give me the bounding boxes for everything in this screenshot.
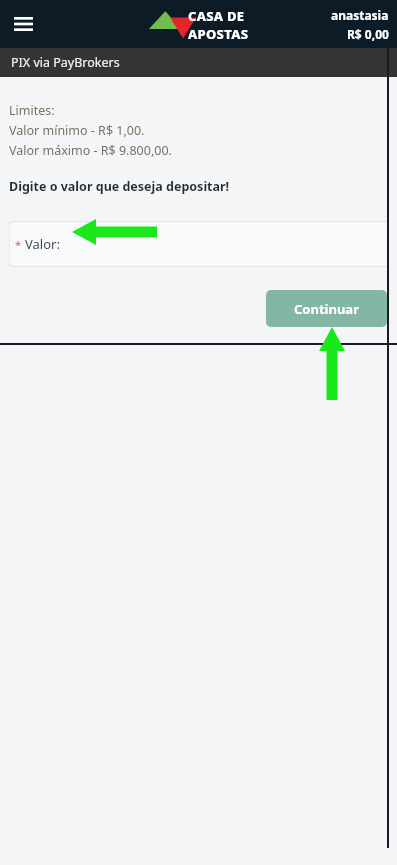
staticText: R$ 0,00	[347, 26, 389, 42]
staticText: PIX via PayBrokers	[11, 54, 120, 71]
button[interactable]: Continuar	[266, 290, 387, 327]
staticText: Valor máximo - R$ 9.800,00.	[9, 142, 172, 159]
button[interactable]: Casa de Apostas home	[148, 6, 257, 42]
staticText: Digite o valor que deseja depositar!	[9, 178, 230, 195]
button[interactable]: PIX via PayBrokers	[0, 48, 397, 77]
button[interactable]: anastasia	[331, 7, 389, 42]
staticText: anastasia	[331, 7, 389, 23]
button[interactable]: Valor input field	[9, 221, 388, 267]
staticText: CASA DE	[188, 7, 245, 25]
staticText: Valor mínimo - R$ 1,00.	[9, 122, 145, 139]
staticText: Continuar	[294, 300, 359, 318]
staticText: APOSTAS	[188, 25, 249, 43]
staticText: *	[15, 237, 22, 252]
button[interactable]: Open navigation menu	[4, 5, 42, 43]
staticText: Limites:	[9, 102, 55, 119]
staticText: Valor:	[25, 235, 60, 253]
